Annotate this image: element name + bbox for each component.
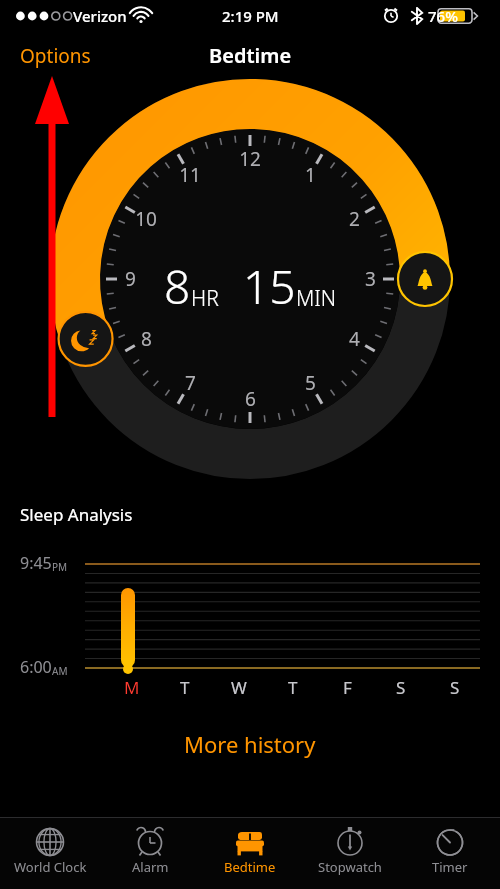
- staticText: 15: [219, 255, 296, 318]
- staticText: 7: [185, 370, 196, 396]
- staticText: 8: [164, 255, 191, 318]
- button[interactable]: Timer: [400, 818, 500, 889]
- staticText: W: [231, 676, 247, 699]
- staticText: AM: [52, 664, 68, 678]
- staticText: 76%: [428, 6, 458, 26]
- staticText: 8: [141, 326, 152, 352]
- staticText: S: [396, 676, 406, 699]
- staticText: Timer: [432, 858, 468, 876]
- staticText: HR: [191, 284, 219, 313]
- staticText: 9:45: [20, 552, 52, 574]
- staticText: 12: [239, 146, 261, 172]
- staticText: More history: [184, 729, 316, 759]
- staticText: 11: [179, 162, 201, 188]
- staticText: Bedtime: [209, 42, 292, 69]
- staticText: Sleep Analysis: [20, 503, 133, 526]
- button[interactable]: Stopwatch: [300, 818, 400, 889]
- staticText: 9: [125, 266, 136, 292]
- staticText: Stopwatch: [318, 858, 382, 876]
- staticText: 4: [349, 326, 360, 352]
- staticText: 2:19 PM: [222, 6, 279, 26]
- other: Bedtime and wake handles: [0, 79, 500, 499]
- staticText: 2: [349, 206, 360, 232]
- staticText: 1: [305, 162, 316, 188]
- staticText: 6: [245, 386, 256, 412]
- staticText: Verizon: [73, 6, 127, 26]
- button[interactable]: Alarm: [100, 818, 200, 889]
- staticText: 3: [365, 266, 376, 292]
- button[interactable]: Bedtime: [200, 818, 300, 889]
- button[interactable]: More history: [160, 721, 340, 767]
- staticText: 5: [305, 370, 316, 396]
- staticText: Bedtime: [224, 858, 276, 876]
- staticText: World Clock: [14, 858, 87, 876]
- staticText: F: [343, 676, 352, 699]
- staticText: Options: [20, 43, 91, 69]
- staticText: MIN: [296, 284, 337, 313]
- staticText: PM: [52, 560, 68, 574]
- staticText: 6:00: [20, 656, 52, 678]
- button[interactable]: Options: [0, 35, 111, 77]
- staticText: T: [288, 676, 298, 699]
- staticText: 10: [135, 206, 157, 232]
- staticText: T: [180, 676, 190, 699]
- staticText: S: [450, 676, 460, 699]
- button[interactable]: World Clock: [0, 818, 100, 889]
- staticText: M: [124, 676, 140, 699]
- staticText: Alarm: [132, 858, 169, 876]
